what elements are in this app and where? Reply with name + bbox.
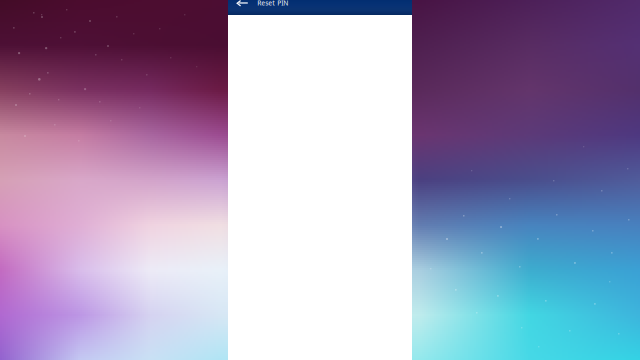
button[interactable]: Back (228, 0, 257, 15)
staticText: Reset PIN (257, 0, 288, 7)
